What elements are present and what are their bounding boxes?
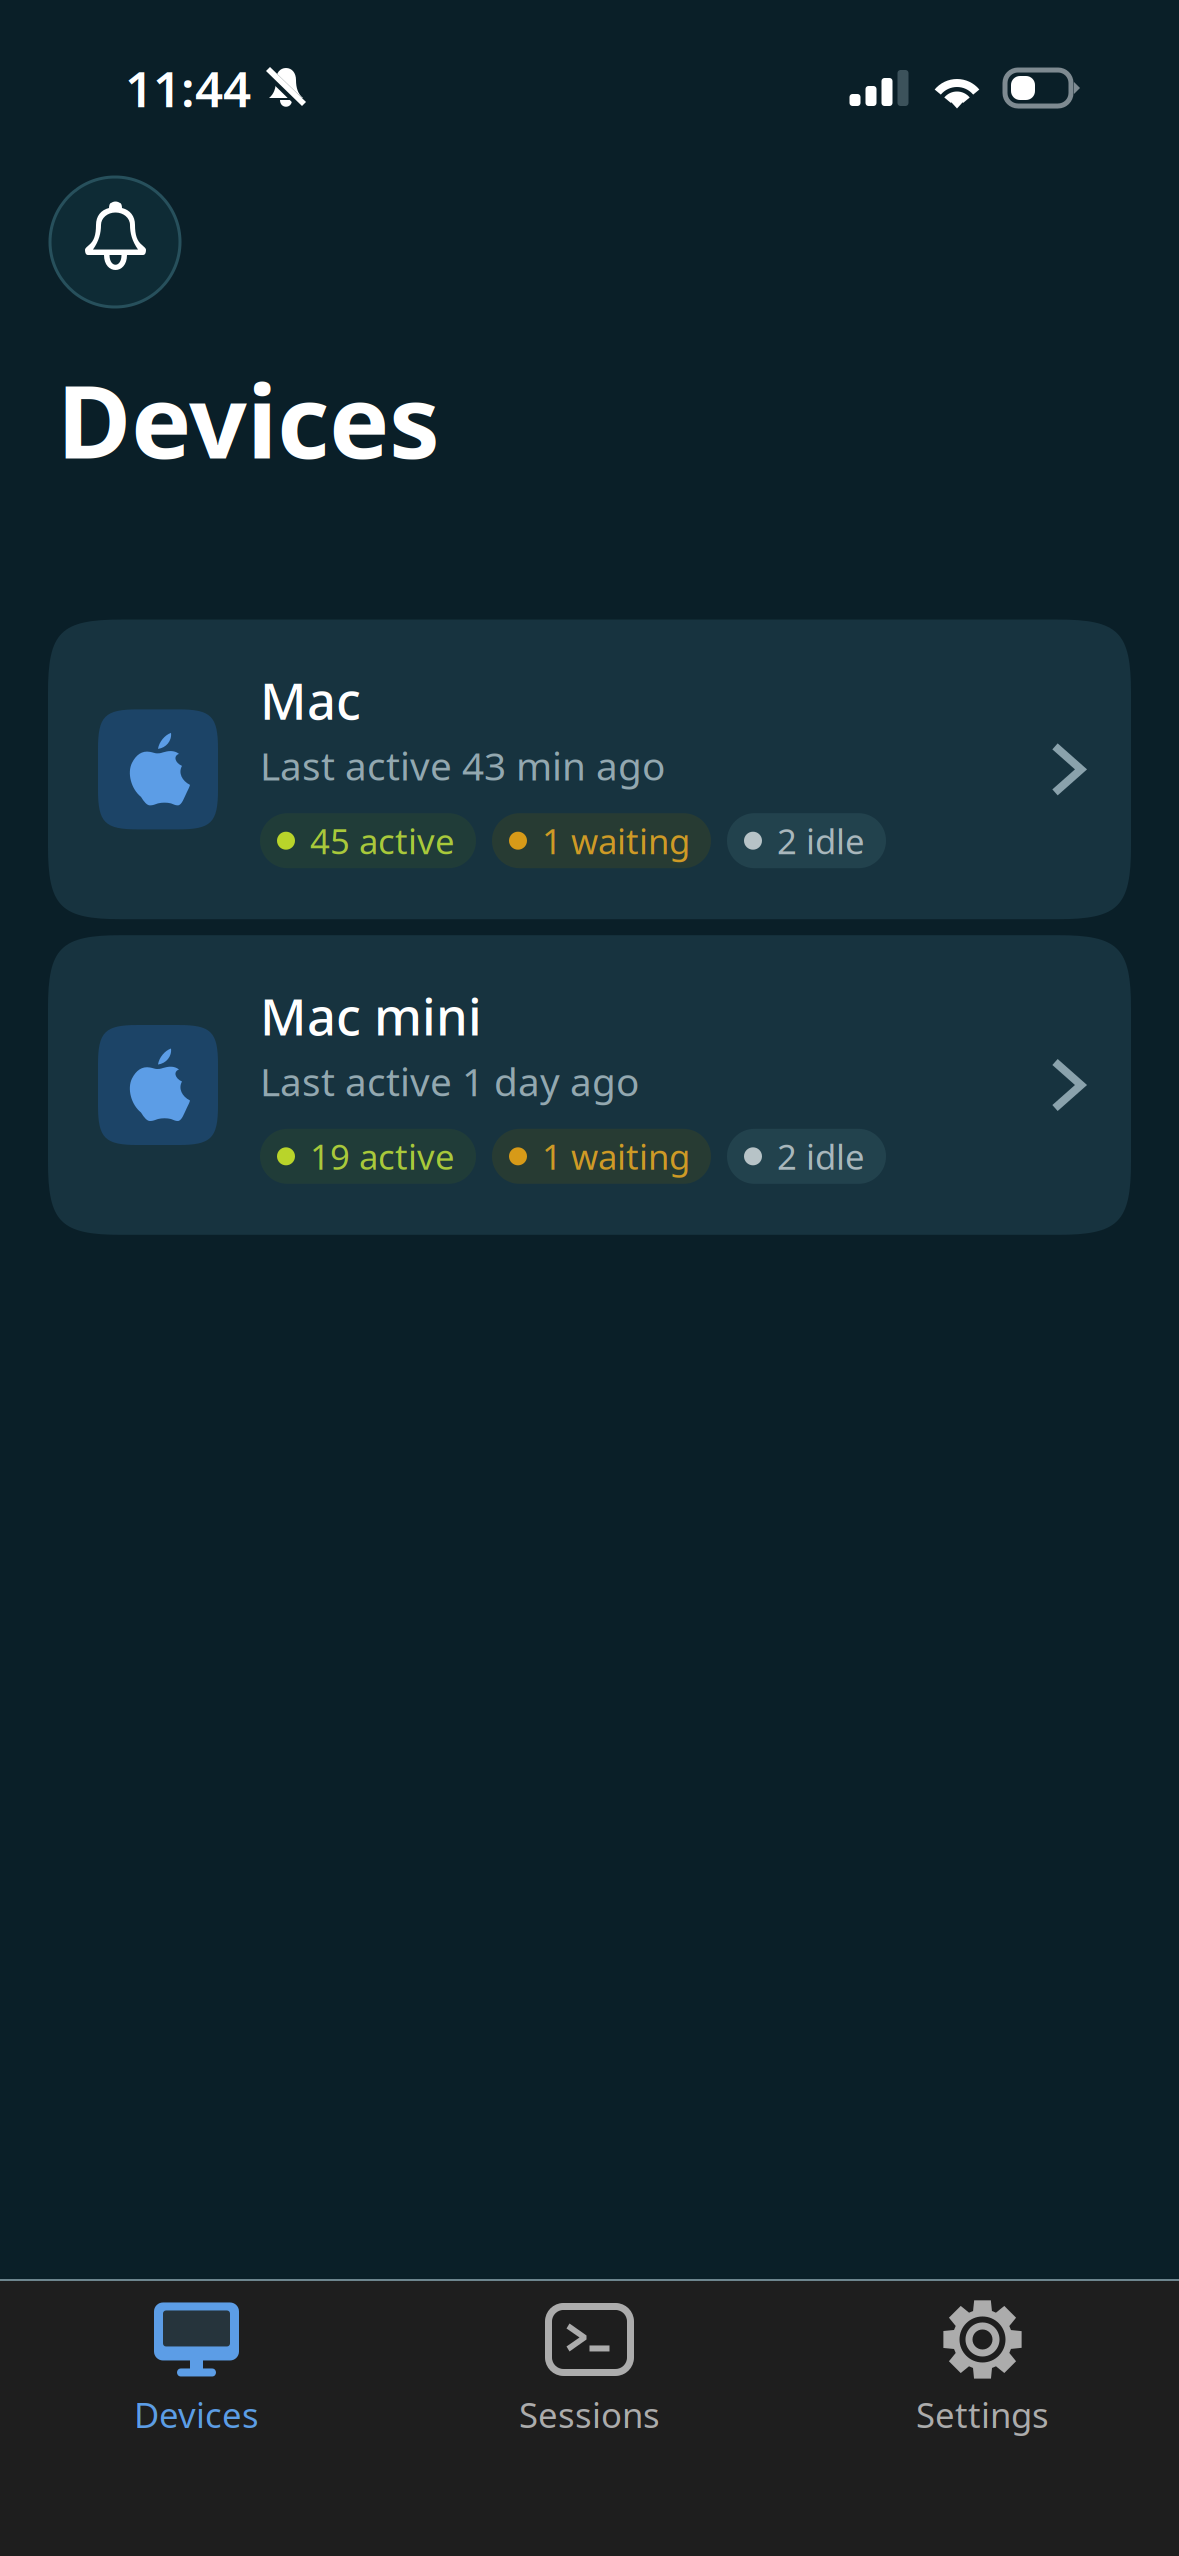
staticText: 1 waiting: [542, 818, 690, 864]
staticText: Last active 1 day ago: [260, 1055, 639, 1107]
staticText: 2 idle: [777, 818, 865, 864]
staticText: Settings: [916, 2391, 1049, 2437]
button[interactable]: Devices: [0, 2281, 393, 2433]
staticText: Devices: [134, 2391, 259, 2437]
button[interactable]: Settings: [786, 2281, 1179, 2433]
staticText: Devices: [57, 352, 440, 487]
staticText: 45 active: [310, 818, 455, 864]
staticText: Mac: [260, 667, 361, 734]
staticText: 2 idle: [777, 1133, 865, 1179]
staticText: 19 active: [310, 1133, 455, 1179]
button[interactable]: Sessions: [393, 2281, 786, 2433]
button[interactable]: Mac: [48, 620, 1131, 919]
staticText: Mac mini: [260, 982, 482, 1049]
staticText: 11:44: [125, 55, 251, 121]
staticText: Sessions: [519, 2391, 660, 2437]
button[interactable]: Notifications: [50, 177, 180, 307]
button[interactable]: Mac mini: [48, 935, 1131, 1235]
staticText: Last active 43 min ago: [260, 740, 665, 791]
staticText: 1 waiting: [542, 1133, 690, 1179]
